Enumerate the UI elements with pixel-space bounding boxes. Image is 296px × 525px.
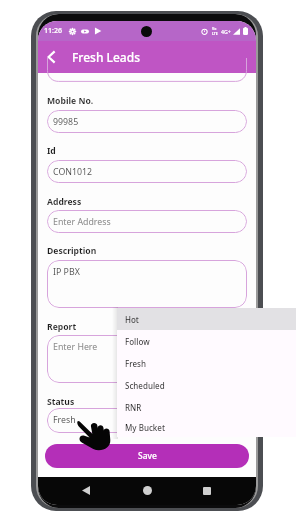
staticText: My Bucket	[125, 422, 165, 433]
button[interactable]: Hot	[117, 308, 296, 330]
staticText: Mobile No.	[47, 95, 94, 107]
button[interactable]: My Bucket	[117, 418, 296, 437]
button[interactable]: Enter Here	[47, 335, 247, 383]
staticText: Fresh	[125, 358, 146, 369]
staticText: Id	[47, 145, 56, 157]
button[interactable]: CON1012	[47, 160, 247, 183]
staticText: Hot	[125, 314, 139, 325]
staticText: Description	[47, 245, 97, 257]
staticText: Enter Address	[53, 216, 111, 228]
staticText: Address	[47, 196, 82, 208]
button[interactable]: 99985	[47, 110, 247, 133]
button[interactable]: Back	[73, 477, 99, 504]
staticText: Fresh Leads	[72, 49, 140, 65]
button[interactable]: Home	[134, 477, 160, 504]
staticText: CON1012	[53, 166, 93, 178]
button[interactable]: Fresh	[47, 408, 247, 433]
staticText: Scheduled	[125, 380, 165, 391]
button[interactable]: Save	[45, 444, 249, 468]
staticText: IP PBX	[53, 266, 80, 278]
staticText: Follow	[125, 336, 150, 347]
button[interactable]: Fresh	[117, 352, 296, 374]
button[interactable]: Scheduled	[117, 374, 296, 396]
staticText: Fresh	[53, 414, 76, 426]
button[interactable]: RNR	[117, 396, 296, 418]
staticText: LTE	[212, 31, 218, 36]
staticText: 99985	[53, 116, 79, 128]
staticText: Save	[138, 450, 157, 462]
staticText: 4G+	[221, 28, 231, 35]
staticText: Report	[47, 321, 77, 333]
staticText: Status	[47, 396, 75, 408]
button[interactable]: Follow	[117, 330, 296, 352]
button[interactable]: Back	[38, 41, 64, 73]
staticText: Vo	[212, 26, 217, 31]
staticText: RNR	[125, 402, 142, 413]
button[interactable]: Enter Address	[47, 210, 247, 233]
staticText: Enter Here	[53, 341, 98, 353]
staticText: 11:26	[44, 26, 62, 36]
button[interactable]: IP PBX	[47, 260, 247, 308]
button[interactable]: Recents	[194, 477, 220, 504]
